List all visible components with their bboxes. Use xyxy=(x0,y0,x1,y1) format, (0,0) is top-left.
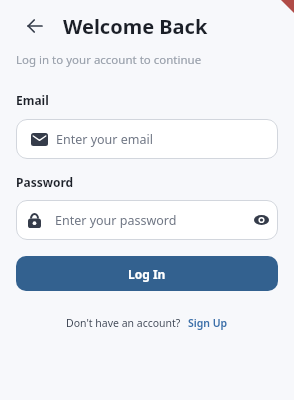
staticText: Sign Up xyxy=(188,316,228,330)
staticText: Password xyxy=(16,174,74,190)
button[interactable]: Log In xyxy=(16,256,278,291)
staticText: Welcome Back xyxy=(63,13,208,40)
button[interactable] xyxy=(254,215,269,225)
staticText: Enter your password xyxy=(55,212,177,229)
button[interactable] xyxy=(18,9,52,43)
button[interactable]: Sign Up xyxy=(188,316,228,330)
staticText: Log In xyxy=(128,266,166,282)
staticText: Log in to your account to continue xyxy=(16,52,202,68)
staticText: Don't have an account? xyxy=(66,316,181,330)
button[interactable]: Enter your email xyxy=(16,119,278,159)
staticText: Enter your email xyxy=(56,131,153,148)
button[interactable]: Enter your password xyxy=(16,200,278,240)
staticText: Email xyxy=(16,92,49,108)
